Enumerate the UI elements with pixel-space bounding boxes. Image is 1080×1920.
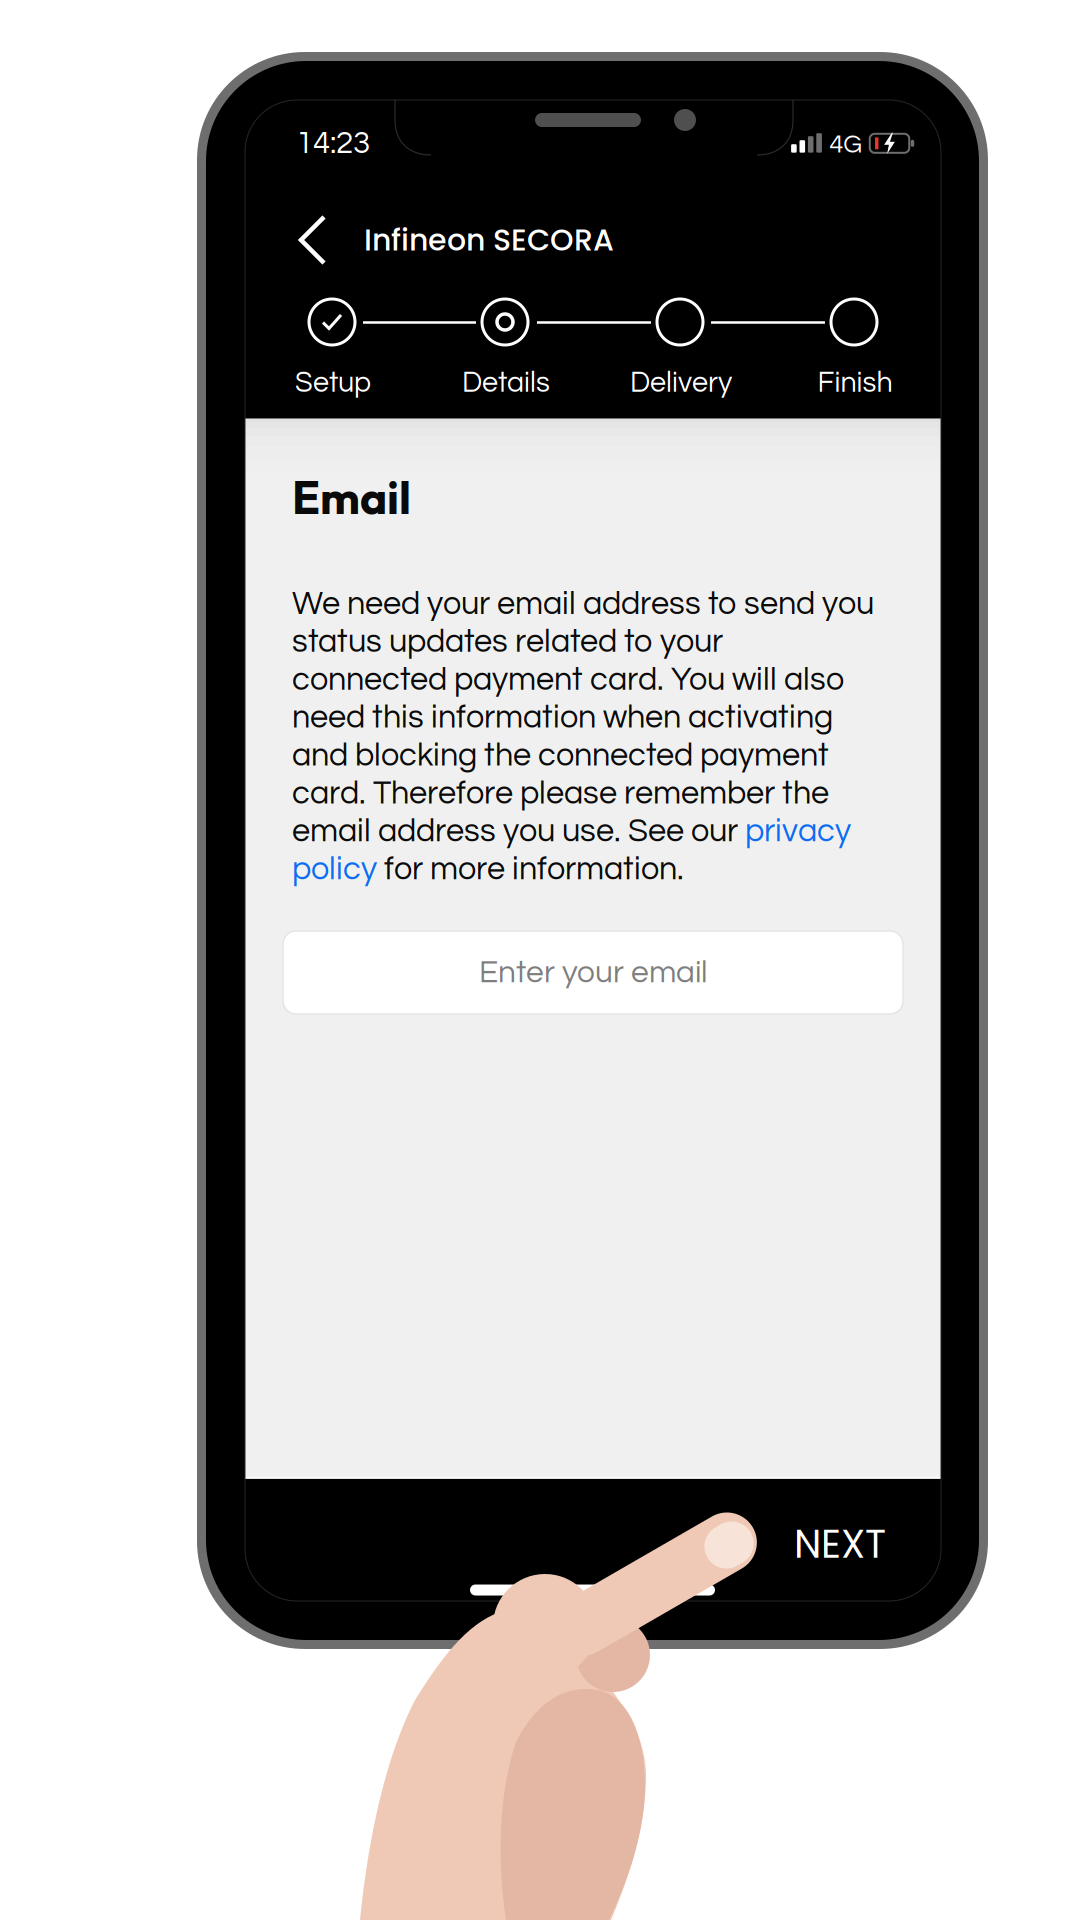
staticText: 14:23	[296, 127, 370, 160]
staticText: Setup	[295, 368, 371, 398]
staticText: Delivery	[630, 368, 732, 398]
button[interactable]: policy	[292, 853, 377, 886]
staticText: 4G	[829, 131, 862, 158]
staticText: Enter your email	[479, 956, 707, 989]
button[interactable]: privacy	[745, 815, 851, 848]
staticText: NEXT	[794, 1517, 886, 1571]
button[interactable]: Enter your email	[283, 931, 903, 1014]
staticText: Infineon SECORA	[364, 219, 614, 261]
staticText: need this information when activating	[292, 701, 833, 734]
staticText: privacy	[745, 815, 851, 848]
button[interactable]: NEXT	[745, 1498, 935, 1590]
staticText: policy	[292, 853, 377, 886]
staticText: Details	[462, 368, 550, 398]
staticText: Email	[292, 468, 411, 526]
staticText: for more information.	[377, 853, 684, 886]
staticText: and blocking the connected payment	[292, 739, 829, 772]
staticText: status updates related to your	[292, 625, 723, 659]
button[interactable]: Back	[273, 196, 353, 284]
staticText: We need your email address to send you	[292, 587, 874, 621]
staticText: connected payment card. You will also	[292, 663, 844, 696]
staticText: card. Therefore please remember the	[292, 777, 829, 810]
staticText: email address you use. See our	[292, 815, 745, 848]
staticText: Finish	[817, 368, 892, 398]
